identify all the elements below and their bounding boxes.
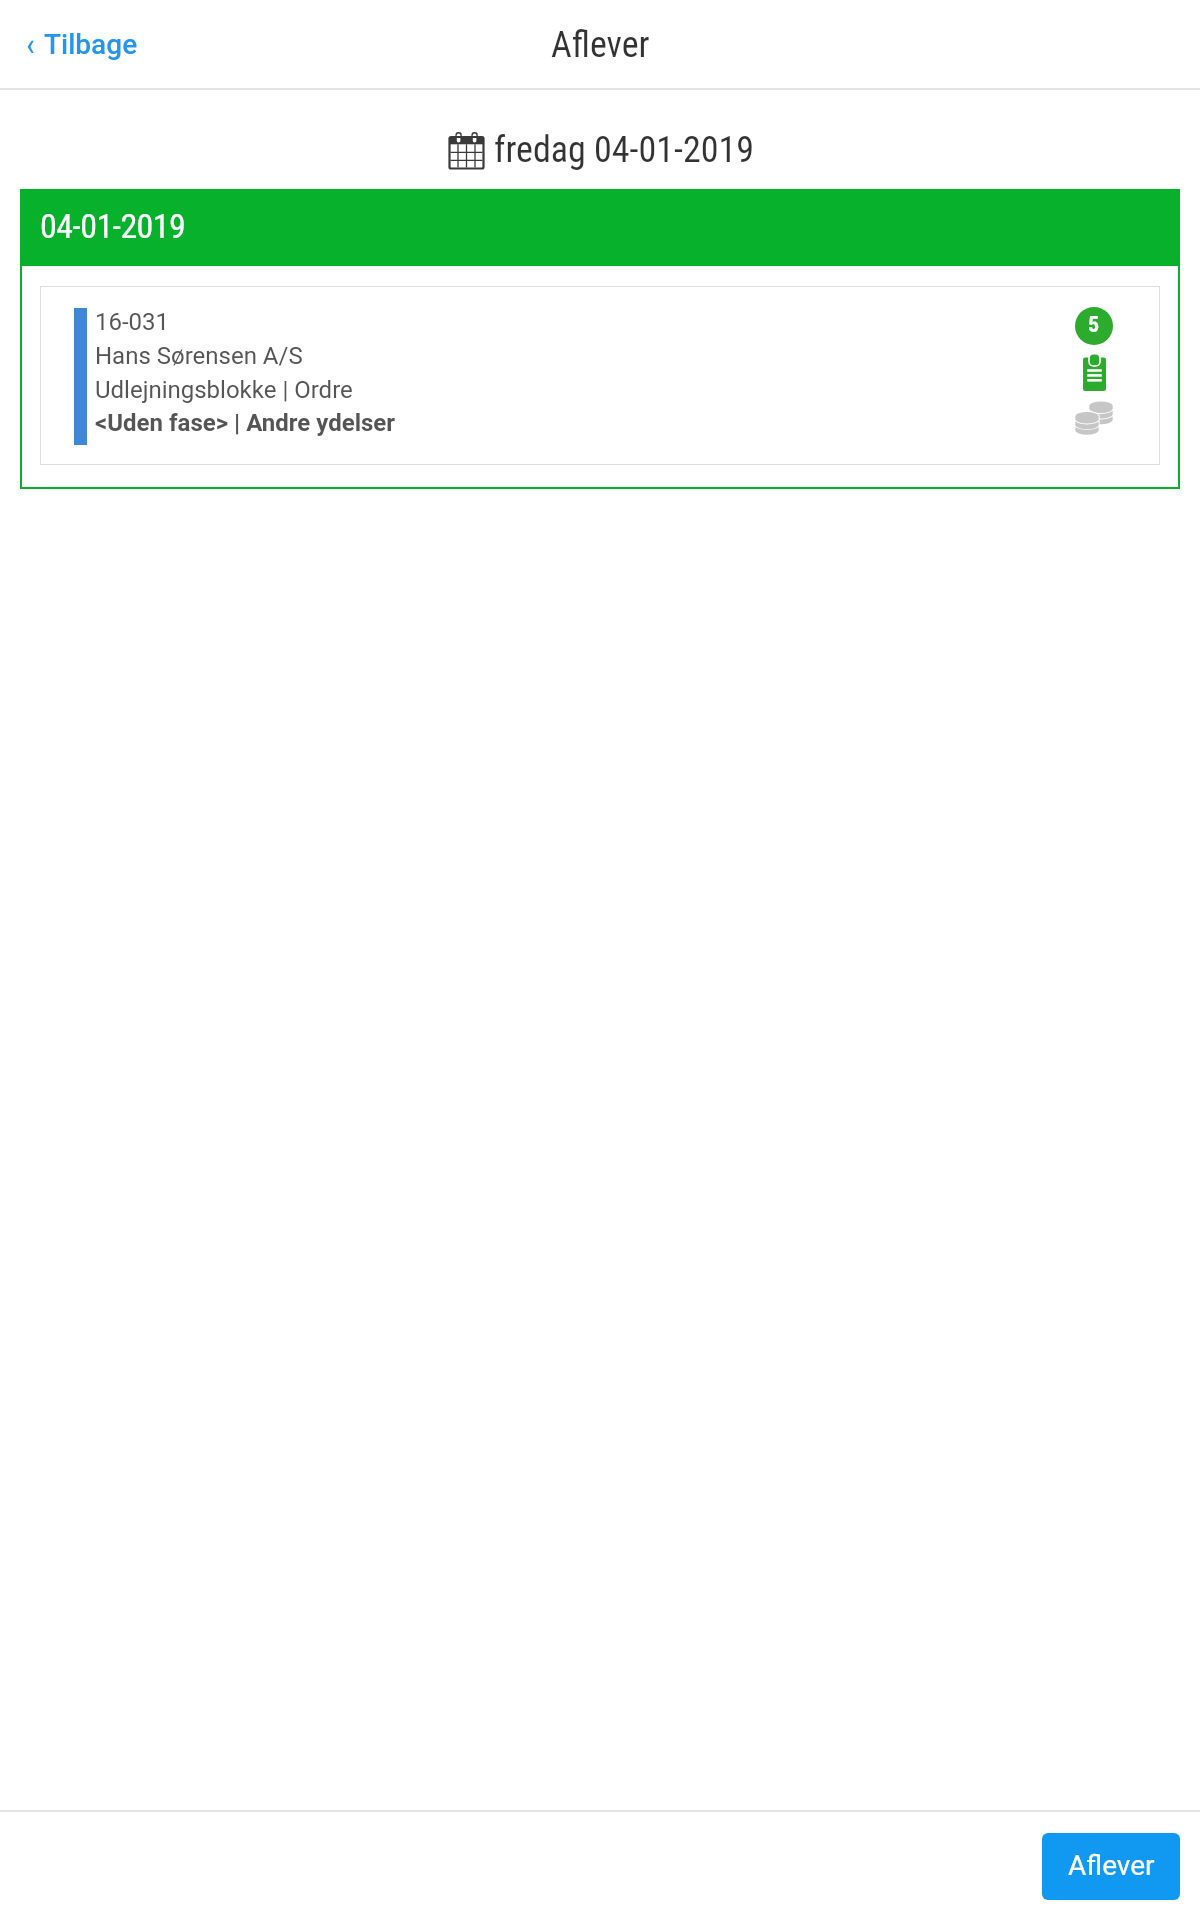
button[interactable]: ‹: [0, 0, 168, 90]
button[interactable]: Aflever: [1042, 1833, 1180, 1900]
staticText: 5: [1088, 312, 1100, 338]
staticText: 04-01-2019: [40, 206, 186, 246]
staticText: ‹: [26, 25, 35, 63]
staticText: Aflever: [1068, 1849, 1155, 1882]
staticText: Hans Sørensen A/S: [95, 342, 303, 370]
staticText: fredag 04-01-2019: [494, 129, 755, 171]
staticText: Aflever: [551, 24, 650, 66]
button[interactable]: 16-031: [40, 286, 1160, 465]
staticText: 16-031: [95, 308, 170, 336]
button[interactable]: Registreringer: [1083, 353, 1106, 391]
other: Vælg dato: [449, 132, 484, 170]
staticText: <Uden fase> | Andre ydelser: [95, 409, 396, 437]
staticText: Tilbage: [44, 28, 138, 61]
staticText: Udlejningsblokke | Ordre: [95, 376, 353, 404]
button[interactable]: Priser: [1074, 401, 1114, 432]
button[interactable]: 5: [1075, 307, 1113, 345]
